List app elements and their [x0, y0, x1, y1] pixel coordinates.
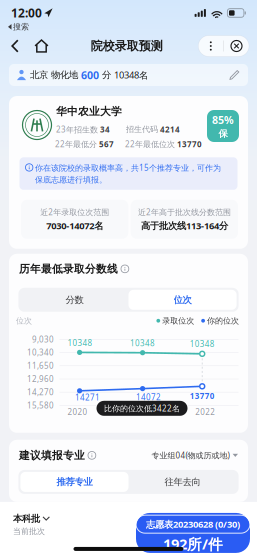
- staticText: 保: [218, 128, 227, 139]
- button[interactable]: 分数: [20, 290, 128, 310]
- staticText: 保底志愿进行填报。: [35, 175, 107, 185]
- button[interactable]: 首页: [28, 33, 55, 59]
- staticText: 往年去向: [165, 476, 201, 488]
- staticText: 13770: [190, 390, 215, 401]
- staticText: 10348: [130, 338, 155, 348]
- staticText: 北京: [30, 69, 48, 81]
- staticText: 招生代码: [126, 124, 158, 134]
- button[interactable]: 返回搜索: [0, 21, 29, 32]
- button[interactable]: 返回: [2, 33, 28, 59]
- staticText: 你在该院校的录取概率高，共15个推荐专业，可作为: [35, 162, 221, 173]
- staticText: 华中农业大学: [56, 105, 122, 118]
- staticText: 志愿表20230628 (0/30): [146, 518, 240, 530]
- staticText: 本科批: [13, 513, 40, 524]
- button[interactable]: 位次: [128, 290, 237, 310]
- staticText: 高于批次线113-164分: [141, 219, 228, 232]
- button[interactable]: 关闭: [224, 35, 249, 56]
- staticText: 推荐专业: [56, 476, 92, 488]
- staticText: 23年招生数: [56, 124, 98, 135]
- staticText: 近2年高于批次线分数范围: [138, 207, 231, 217]
- staticText: 13770: [177, 139, 202, 149]
- staticText: 192所/件: [163, 534, 223, 554]
- staticText: 14072: [136, 392, 161, 402]
- staticText: 10348: [190, 338, 215, 349]
- staticText: 2020: [68, 406, 88, 417]
- staticText: 22年最低分: [55, 139, 97, 149]
- staticText: 院校录取预测: [91, 39, 163, 53]
- button[interactable]: 推荐专业: [20, 472, 128, 492]
- staticText: 10348: [68, 338, 93, 348]
- staticText: 专业组04(物或历或地): [152, 450, 230, 461]
- staticText: 34: [100, 124, 110, 135]
- staticText: 位次: [174, 294, 192, 306]
- staticText: 22年最低位次: [125, 139, 175, 149]
- staticText: 比你的位次低3422名: [104, 403, 180, 414]
- staticText: 近2年录取位次范围: [40, 207, 109, 217]
- staticText: 7030-14072名: [46, 219, 103, 232]
- staticText: 当前批次: [13, 526, 45, 536]
- staticText: 录取位次: [160, 316, 194, 326]
- staticText: 9,030: [32, 334, 54, 345]
- button[interactable]: 北京: [9, 64, 248, 86]
- staticText: 分: [99, 69, 114, 81]
- staticText: 85%: [212, 113, 234, 127]
- button[interactable]: 往年去向: [128, 472, 237, 492]
- staticText: 12,960: [27, 374, 54, 384]
- staticText: 历年最低录取分数线: [19, 262, 118, 275]
- staticText: 4214: [160, 124, 180, 135]
- staticText: 14,270: [27, 387, 54, 397]
- staticText: 600: [81, 68, 99, 82]
- staticText: 位次: [16, 316, 32, 326]
- button[interactable]: 更多: [198, 35, 223, 56]
- staticText: [158, 125, 160, 134]
- staticText: 建议填报专业: [19, 449, 85, 462]
- button[interactable]: 专业组04(物或历或地): [152, 450, 238, 461]
- staticText: 2022: [195, 406, 215, 417]
- staticText: 567: [99, 139, 114, 149]
- staticText: 11,650: [27, 360, 54, 371]
- staticText: 分数: [65, 294, 83, 306]
- staticText: 你的位次: [205, 316, 239, 326]
- staticText: 搜索: [13, 22, 29, 32]
- staticText: 14271: [75, 392, 100, 403]
- staticText: 12:00: [11, 5, 42, 21]
- staticText: 15,580: [27, 400, 54, 411]
- button[interactable]: 本科批: [0, 502, 50, 536]
- staticText: 10348名: [114, 69, 148, 81]
- staticText: 10,340: [27, 347, 54, 358]
- staticText: 物化地: [48, 69, 81, 81]
